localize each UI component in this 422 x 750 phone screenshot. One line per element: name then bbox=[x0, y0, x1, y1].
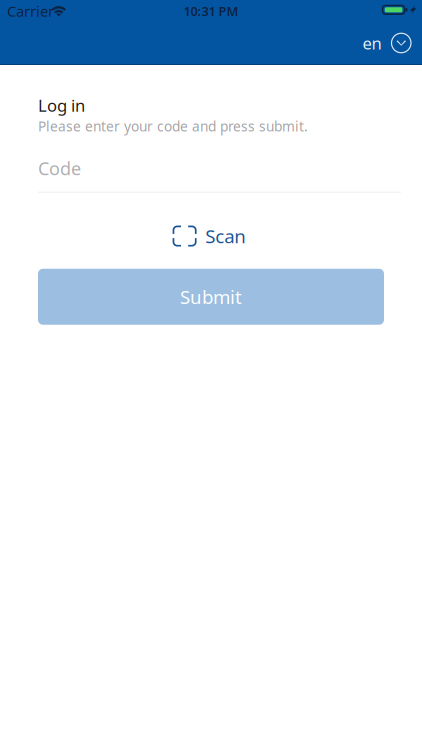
staticText: 10:31 PM bbox=[183, 2, 238, 20]
staticText: en bbox=[362, 32, 381, 54]
staticText: Scan bbox=[205, 223, 246, 249]
button[interactable]: en bbox=[351, 26, 422, 60]
staticText: Log in bbox=[38, 94, 85, 117]
staticText: Carrier bbox=[7, 1, 54, 21]
button[interactable]: Scan bbox=[174, 223, 248, 249]
staticText: Please enter your code and press submit. bbox=[38, 117, 308, 135]
staticText: Submit bbox=[180, 284, 242, 309]
button[interactable]: Submit bbox=[38, 269, 384, 325]
staticText: Code bbox=[38, 156, 81, 180]
